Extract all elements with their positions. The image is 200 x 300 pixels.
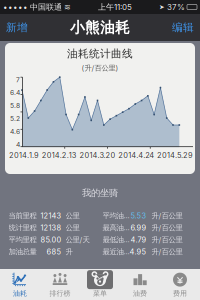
staticText: (升/百公里): [81, 63, 118, 73]
staticText: 升: [65, 247, 72, 256]
staticText: 85.00: [40, 235, 61, 244]
staticText: 小熊油耗: [70, 18, 130, 37]
button[interactable]: 油费: [120, 269, 160, 300]
button[interactable]: 费用: [160, 269, 200, 300]
staticText: ➤: [159, 3, 165, 11]
staticText: 5.2: [10, 115, 20, 123]
staticText: 最近油耗: [102, 247, 129, 256]
staticText: 685: [46, 247, 61, 256]
staticText: 2014.1.9: [9, 151, 39, 160]
staticText: 12143: [40, 211, 61, 220]
staticText: 2014.2.13: [42, 151, 77, 160]
staticText: 2014.5.29: [157, 151, 193, 160]
staticText: 费用: [173, 289, 187, 298]
staticText: 平均油耗: [102, 211, 129, 220]
button[interactable]: 菜单: [80, 269, 120, 300]
staticText: 6.4: [10, 89, 20, 97]
staticText: ≋: [64, 2, 71, 12]
staticText: 加油总量: [8, 247, 36, 256]
button[interactable]: 油耗: [0, 269, 40, 300]
staticText: 2014.3.20: [79, 151, 115, 160]
staticText: 7: [16, 76, 20, 84]
staticText: 最低油耗: [102, 235, 129, 244]
staticText: 5.53: [130, 211, 146, 220]
staticText: 油费: [133, 289, 147, 298]
staticText: 37%: [165, 2, 187, 12]
staticText: 升/百公里: [151, 235, 182, 244]
staticText: 2014.4.24: [118, 151, 154, 160]
staticText: 4: [16, 141, 20, 149]
staticText: 当前里程: [8, 211, 36, 220]
staticText: 升/百公里: [151, 211, 182, 220]
staticText: 公里: [65, 211, 79, 220]
staticText: 升/百公里: [151, 223, 182, 232]
staticText: •••••: [3, 2, 28, 12]
staticText: 编辑: [172, 21, 194, 34]
staticText: 上午11:05: [98, 2, 132, 12]
staticText: 最高油耗: [102, 223, 129, 232]
staticText: 平均里程: [8, 235, 36, 244]
staticText: 菜单: [93, 289, 107, 298]
staticText: 油耗: [13, 289, 27, 298]
staticText: 油耗统计曲线: [67, 47, 133, 60]
staticText: 升/百公里: [151, 247, 182, 256]
staticText: 公里/天: [65, 235, 89, 244]
staticText: 5.8: [10, 102, 20, 110]
staticText: 4.6: [10, 128, 20, 136]
staticText: 公里: [65, 223, 79, 232]
staticText: 4.95: [129, 247, 146, 256]
staticText: 12138: [40, 223, 61, 232]
staticText: 中国联通: [28, 2, 64, 12]
staticText: 4.79: [130, 235, 146, 244]
button[interactable]: 排行榜: [40, 269, 80, 300]
button[interactable]: 新增: [3, 19, 31, 36]
staticText: 我的坐骑: [82, 187, 118, 199]
staticText: 6.99: [130, 223, 146, 232]
staticText: 排行榜: [49, 289, 70, 298]
staticText: 新增: [6, 21, 28, 34]
staticText: 统计里程: [8, 223, 36, 232]
button[interactable]: 编辑: [169, 19, 197, 36]
